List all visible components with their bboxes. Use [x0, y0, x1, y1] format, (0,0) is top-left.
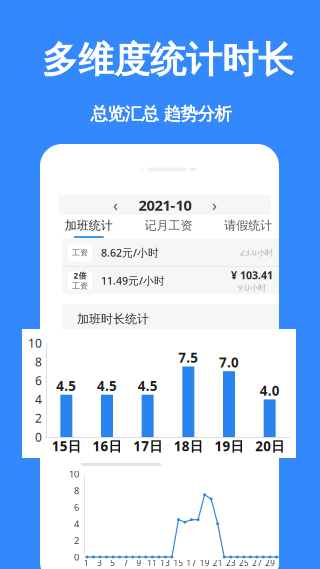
staticText: 7.5 [178, 349, 198, 366]
staticText: ¥ 103.41 [231, 268, 273, 282]
staticText: 4 [74, 518, 79, 530]
button[interactable]: Previous month [106, 196, 124, 214]
staticText: 4.0 [260, 382, 280, 399]
staticText: 8 [74, 484, 79, 497]
button[interactable]: 请假统计 [208, 215, 288, 239]
staticText: 加班时长统计 [77, 312, 149, 326]
staticText: 10 [69, 468, 79, 480]
staticText: 16日 [92, 437, 121, 455]
staticText: 23 [226, 558, 236, 568]
button[interactable]: 记月工资 [129, 215, 208, 239]
staticText: 23.0小时 [240, 247, 273, 258]
staticText: 18日 [174, 437, 203, 455]
staticText: 13 [160, 558, 170, 568]
staticText: 9 [137, 558, 142, 568]
staticText: 9.0小时 [238, 282, 266, 293]
staticText: 25 [239, 558, 249, 568]
staticText: 工资 [72, 248, 88, 257]
staticText: 21 [213, 558, 223, 568]
staticText: › [212, 194, 217, 216]
staticText: 请假统计 [224, 218, 272, 233]
staticText: 0 [74, 551, 79, 563]
staticText: 10 [28, 335, 42, 351]
staticText: 工资 [72, 281, 88, 291]
staticText: 6 [74, 501, 79, 513]
button[interactable]: 加班统计 [49, 215, 129, 239]
staticText: 记月工资 [144, 218, 192, 233]
staticText: 29 [265, 558, 275, 568]
staticText: 3 [97, 558, 102, 568]
staticText: 31 [278, 558, 288, 568]
staticText: 4.5 [97, 377, 117, 395]
staticText: 27 [252, 558, 262, 568]
staticText: 20日 [255, 437, 284, 455]
staticText: 2 [35, 410, 42, 426]
staticText: 4.5 [138, 377, 158, 395]
staticText: 加班统计 [65, 218, 113, 233]
staticText: 6 [35, 373, 42, 388]
staticText: 2 [74, 534, 79, 547]
staticText: 8.62元/小时 [101, 245, 159, 260]
staticText: 11.49元/小时 [101, 273, 165, 288]
staticText: 8 [35, 354, 42, 370]
staticText: 多维度统计时长 [42, 38, 294, 82]
staticText: ‹ [113, 194, 118, 216]
staticText: 2021-10 [138, 195, 191, 215]
staticText: 11 [147, 558, 157, 568]
staticText: 5 [110, 558, 115, 568]
staticText: 7.0 [219, 353, 239, 371]
staticText: 17日 [133, 437, 162, 455]
staticText: 2倍 [73, 270, 86, 281]
staticText: 15 [173, 558, 183, 568]
staticText: 总览汇总 趋势分析 [90, 103, 231, 124]
staticText: 4 [35, 391, 42, 407]
staticText: 0 [35, 429, 42, 445]
staticText: 7 [123, 558, 128, 568]
staticText: 17 [187, 558, 197, 568]
button[interactable]: Next month [205, 196, 223, 214]
staticText: 15日 [52, 437, 81, 455]
staticText: 4.5 [56, 377, 76, 395]
staticText: 1 [84, 558, 89, 568]
staticText: 19日 [214, 437, 243, 455]
staticText: 19 [200, 558, 210, 568]
